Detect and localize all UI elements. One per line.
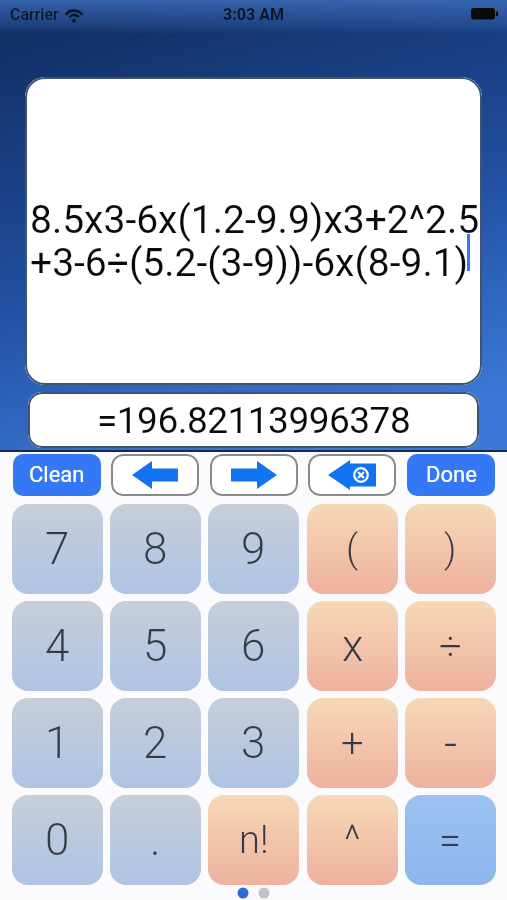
button[interactable]: 0 xyxy=(12,795,103,885)
button[interactable]: 2 xyxy=(110,698,201,788)
button[interactable]: ÷ xyxy=(405,601,496,691)
button[interactable]: - xyxy=(405,698,496,788)
staticText: n! xyxy=(239,818,269,863)
staticText: =196.82113996378 xyxy=(97,399,411,442)
staticText: Done xyxy=(426,462,477,488)
button[interactable]: 7 xyxy=(12,504,103,594)
button[interactable] xyxy=(210,454,298,496)
button[interactable]: 9 xyxy=(208,504,299,594)
button[interactable]: Done xyxy=(407,454,495,496)
button[interactable]: 1 xyxy=(12,698,103,788)
button[interactable]: 8.5x3-6x(1.2-9.9)x3+2^2.5 +3-6÷(5.2-(3-9… xyxy=(25,77,482,385)
staticText: ÷ xyxy=(439,623,462,670)
staticText: 4 xyxy=(45,620,70,672)
button[interactable]: . xyxy=(110,795,201,885)
staticText: 1 xyxy=(45,717,70,769)
button[interactable] xyxy=(308,454,396,496)
staticText: 6 xyxy=(241,620,266,672)
button[interactable]: 5 xyxy=(110,601,201,691)
staticText: 3:03 AM xyxy=(0,5,507,24)
staticText: 0 xyxy=(45,814,70,866)
button[interactable]: ^ xyxy=(307,795,398,885)
button[interactable]: 4 xyxy=(12,601,103,691)
staticText: + xyxy=(341,720,364,767)
button[interactable]: Clean xyxy=(13,454,101,496)
staticText: . xyxy=(150,814,161,866)
button[interactable] xyxy=(111,454,199,496)
staticText: 8 xyxy=(143,523,168,575)
staticText: - xyxy=(444,716,458,770)
staticText: 3 xyxy=(241,717,266,769)
button[interactable]: n! xyxy=(208,795,299,885)
staticText: 7 xyxy=(45,523,70,575)
button[interactable]: 6 xyxy=(208,601,299,691)
button[interactable]: = xyxy=(405,795,496,885)
staticText: ) xyxy=(444,527,457,572)
button[interactable]: =196.82113996378 xyxy=(28,392,479,448)
staticText: ( xyxy=(346,527,359,572)
button[interactable]: 8 xyxy=(110,504,201,594)
staticText: Carrier xyxy=(10,5,59,24)
staticText: ^ xyxy=(344,817,361,864)
staticText: x xyxy=(342,620,364,672)
button[interactable]: 3 xyxy=(208,698,299,788)
button[interactable]: + xyxy=(307,698,398,788)
staticText: 9 xyxy=(241,523,266,575)
staticText: = xyxy=(439,817,462,864)
staticText: Clean xyxy=(29,462,85,488)
button[interactable]: ) xyxy=(405,504,496,594)
button[interactable]: ( xyxy=(307,504,398,594)
staticText: 2 xyxy=(143,717,168,769)
button[interactable]: x xyxy=(307,601,398,691)
staticText: 8.5x3-6x(1.2-9.9)x3+2^2.5 +3-6÷(5.2-(3-9… xyxy=(30,197,480,286)
staticText: 5 xyxy=(143,620,168,672)
